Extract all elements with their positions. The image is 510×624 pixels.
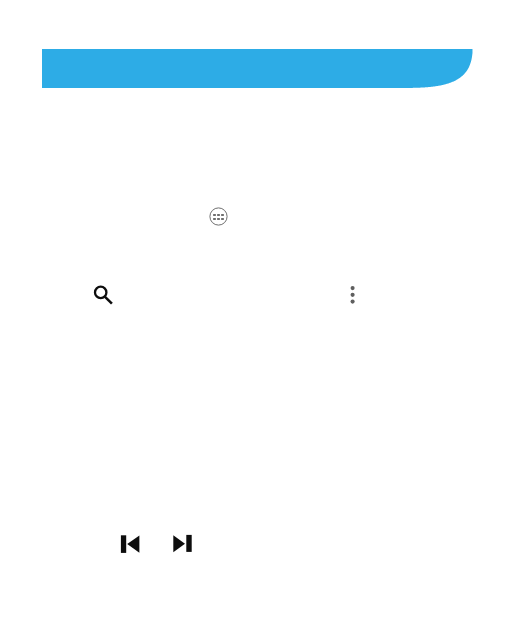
button[interactable]: More options <box>345 283 361 307</box>
button[interactable]: Apps <box>209 207 228 226</box>
button[interactable]: Search <box>92 283 116 307</box>
button[interactable]: Header banner <box>42 49 473 88</box>
button[interactable]: Next track <box>170 532 194 556</box>
button[interactable]: Previous track <box>118 532 142 556</box>
